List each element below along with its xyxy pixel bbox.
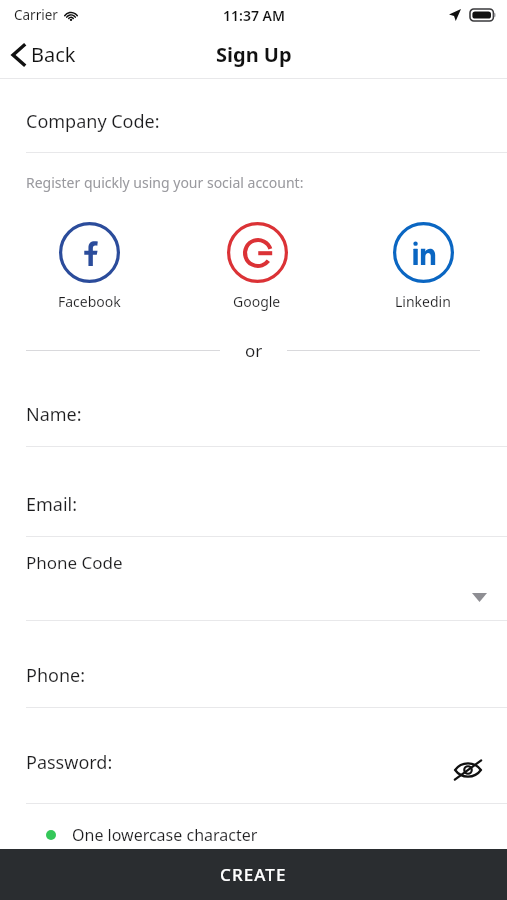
staticText: Phone: xyxy=(26,663,86,688)
staticText: Google xyxy=(233,292,281,311)
staticText: Email: xyxy=(26,492,78,517)
staticText: Linkedin xyxy=(395,292,451,311)
button[interactable]: Phone Code xyxy=(0,551,507,620)
staticText: Sign Up xyxy=(216,41,292,68)
other: Select phone code xyxy=(472,593,487,602)
staticText: Company Code: xyxy=(26,109,160,134)
button[interactable]: Show password xyxy=(451,753,485,787)
staticText: Password: xyxy=(26,750,113,775)
button[interactable]: CREATE xyxy=(0,849,507,900)
staticText: Back xyxy=(31,41,76,68)
staticText: Name: xyxy=(26,402,82,427)
staticText: Phone Code xyxy=(26,551,123,574)
staticText: 11:37 AM xyxy=(223,6,285,25)
staticText: Register quickly using your social accou… xyxy=(26,173,304,192)
staticText: CREATE xyxy=(220,863,287,886)
staticText: or xyxy=(245,339,263,362)
staticText: Facebook xyxy=(58,292,121,311)
button[interactable]: Back xyxy=(0,35,88,74)
staticText: One lowercase character xyxy=(72,824,258,846)
button[interactable]: Linkedin xyxy=(368,222,478,311)
staticText: Carrier xyxy=(14,6,58,24)
button[interactable]: Google xyxy=(202,222,312,311)
button[interactable]: Facebook xyxy=(34,222,144,311)
